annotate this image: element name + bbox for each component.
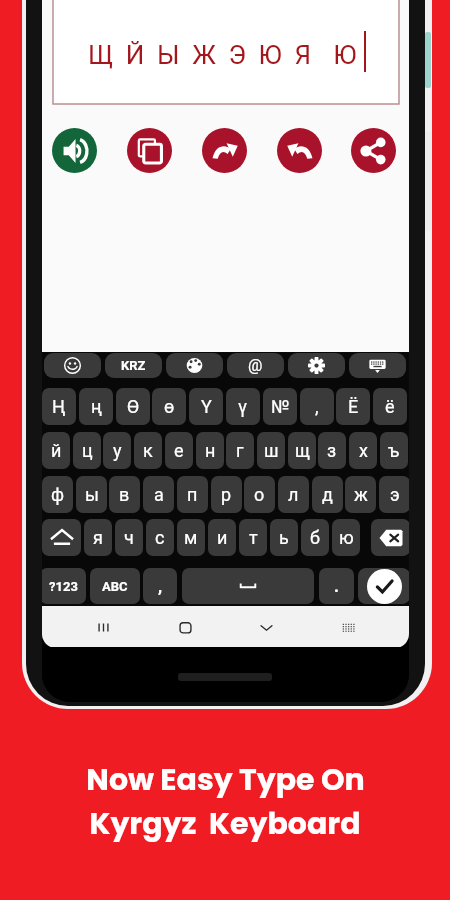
button[interactable]: г [226,432,254,469]
button[interactable]: Keyboard [328,607,368,647]
staticText: т [249,527,258,548]
staticText: Y [201,396,212,417]
button[interactable]: к [134,432,162,469]
button[interactable]: Theme [166,353,223,378]
button[interactable]: KRZ [105,353,162,378]
button[interactable]: ь [270,519,298,556]
staticText: Kyrgyz Keyboard [89,803,361,845]
button[interactable]: ц [73,432,101,469]
button[interactable]: й [42,432,70,469]
staticText: и [217,527,228,548]
button[interactable]: е [165,432,193,469]
button[interactable]: о [244,476,275,513]
button[interactable]: ю [332,519,360,556]
button[interactable]: ч [115,519,143,556]
staticText: Ё [348,396,359,417]
staticText: ж [354,484,368,505]
staticText: ё [385,396,395,417]
button[interactable]: Home [165,607,205,647]
button[interactable]: Ɵ [116,388,150,425]
button[interactable]: ф [42,476,73,513]
staticText: ф [51,484,65,505]
button[interactable]: Backspace [371,519,409,556]
staticText: Щ Й Ы Ж Э Ю Я Ю [88,40,360,70]
button[interactable]: @ [227,353,284,378]
staticText: щ [295,440,310,461]
staticText: б [310,527,320,548]
button[interactable]: с [146,519,174,556]
staticText: KRZ [121,358,146,373]
button[interactable]: в [109,476,140,513]
button[interactable]: м [177,519,205,556]
button[interactable]: , [143,568,177,604]
button[interactable]: Y [189,388,223,425]
button[interactable]: ө [152,388,186,425]
button[interactable]: Settings [288,353,345,378]
staticText: ю [339,527,354,548]
button[interactable]: а [143,476,174,513]
button[interactable]: л [278,476,309,513]
staticText: ц [82,440,93,461]
staticText: № [271,396,290,417]
button[interactable]: щ [288,432,316,469]
button[interactable]: , [300,388,334,425]
button[interactable]: Speak [52,128,97,173]
staticText: . [334,576,339,596]
button[interactable]: Ё [336,388,370,425]
staticText: л [288,484,299,505]
button[interactable]: Redo [202,128,247,173]
button[interactable]: Enter [358,568,409,604]
button[interactable]: ъ [380,432,408,469]
button[interactable]: у [103,432,131,469]
staticText: а [154,484,164,505]
button[interactable]: ABC [90,568,140,604]
button[interactable]: ң [79,388,113,425]
button[interactable]: Undo [277,128,322,173]
staticText: @ [248,356,263,375]
button[interactable]: б [301,519,329,556]
button[interactable]: Hide keyboard [246,607,286,647]
button[interactable]: . [319,568,354,604]
button[interactable]: и [208,519,236,556]
button[interactable]: Share [351,128,396,173]
staticText: я [93,527,103,548]
button[interactable]: я [84,519,112,556]
button[interactable]: Recents [83,607,123,647]
staticText: х [359,440,368,461]
button[interactable]: э [379,476,409,513]
staticText: д [322,484,333,505]
button[interactable]: х [349,432,377,469]
button[interactable]: д [312,476,343,513]
button[interactable]: Emoji [44,353,101,378]
button[interactable]: ?123 [42,568,86,604]
staticText: ө [164,396,175,417]
staticText: Ɵ [127,396,140,417]
button[interactable]: ш [257,432,285,469]
button[interactable]: Keyboard switch [349,353,406,378]
staticText: й [51,440,62,461]
button[interactable]: н [196,432,224,469]
staticText: г [236,440,244,461]
staticText: е [174,440,184,461]
button[interactable]: № [263,388,297,425]
button[interactable]: Copy [127,128,172,173]
button[interactable]: Shift [42,519,81,556]
button[interactable]: ж [345,476,376,513]
button[interactable]: з [318,432,346,469]
button[interactable]: Space [182,568,314,604]
staticText: н [205,440,216,461]
staticText: , [158,576,163,596]
staticText: Ң [52,396,66,417]
staticText: ч [124,527,134,548]
button[interactable]: γ [226,388,260,425]
staticText: в [119,484,130,505]
button[interactable]: р [211,476,242,513]
staticText: , [315,396,319,417]
button[interactable]: ы [76,476,107,513]
button[interactable]: п [177,476,208,513]
staticText: ь [279,527,289,548]
button[interactable]: т [239,519,267,556]
button[interactable]: Ң [42,388,76,425]
button[interactable]: ё [373,388,407,425]
staticText: м [184,527,198,548]
